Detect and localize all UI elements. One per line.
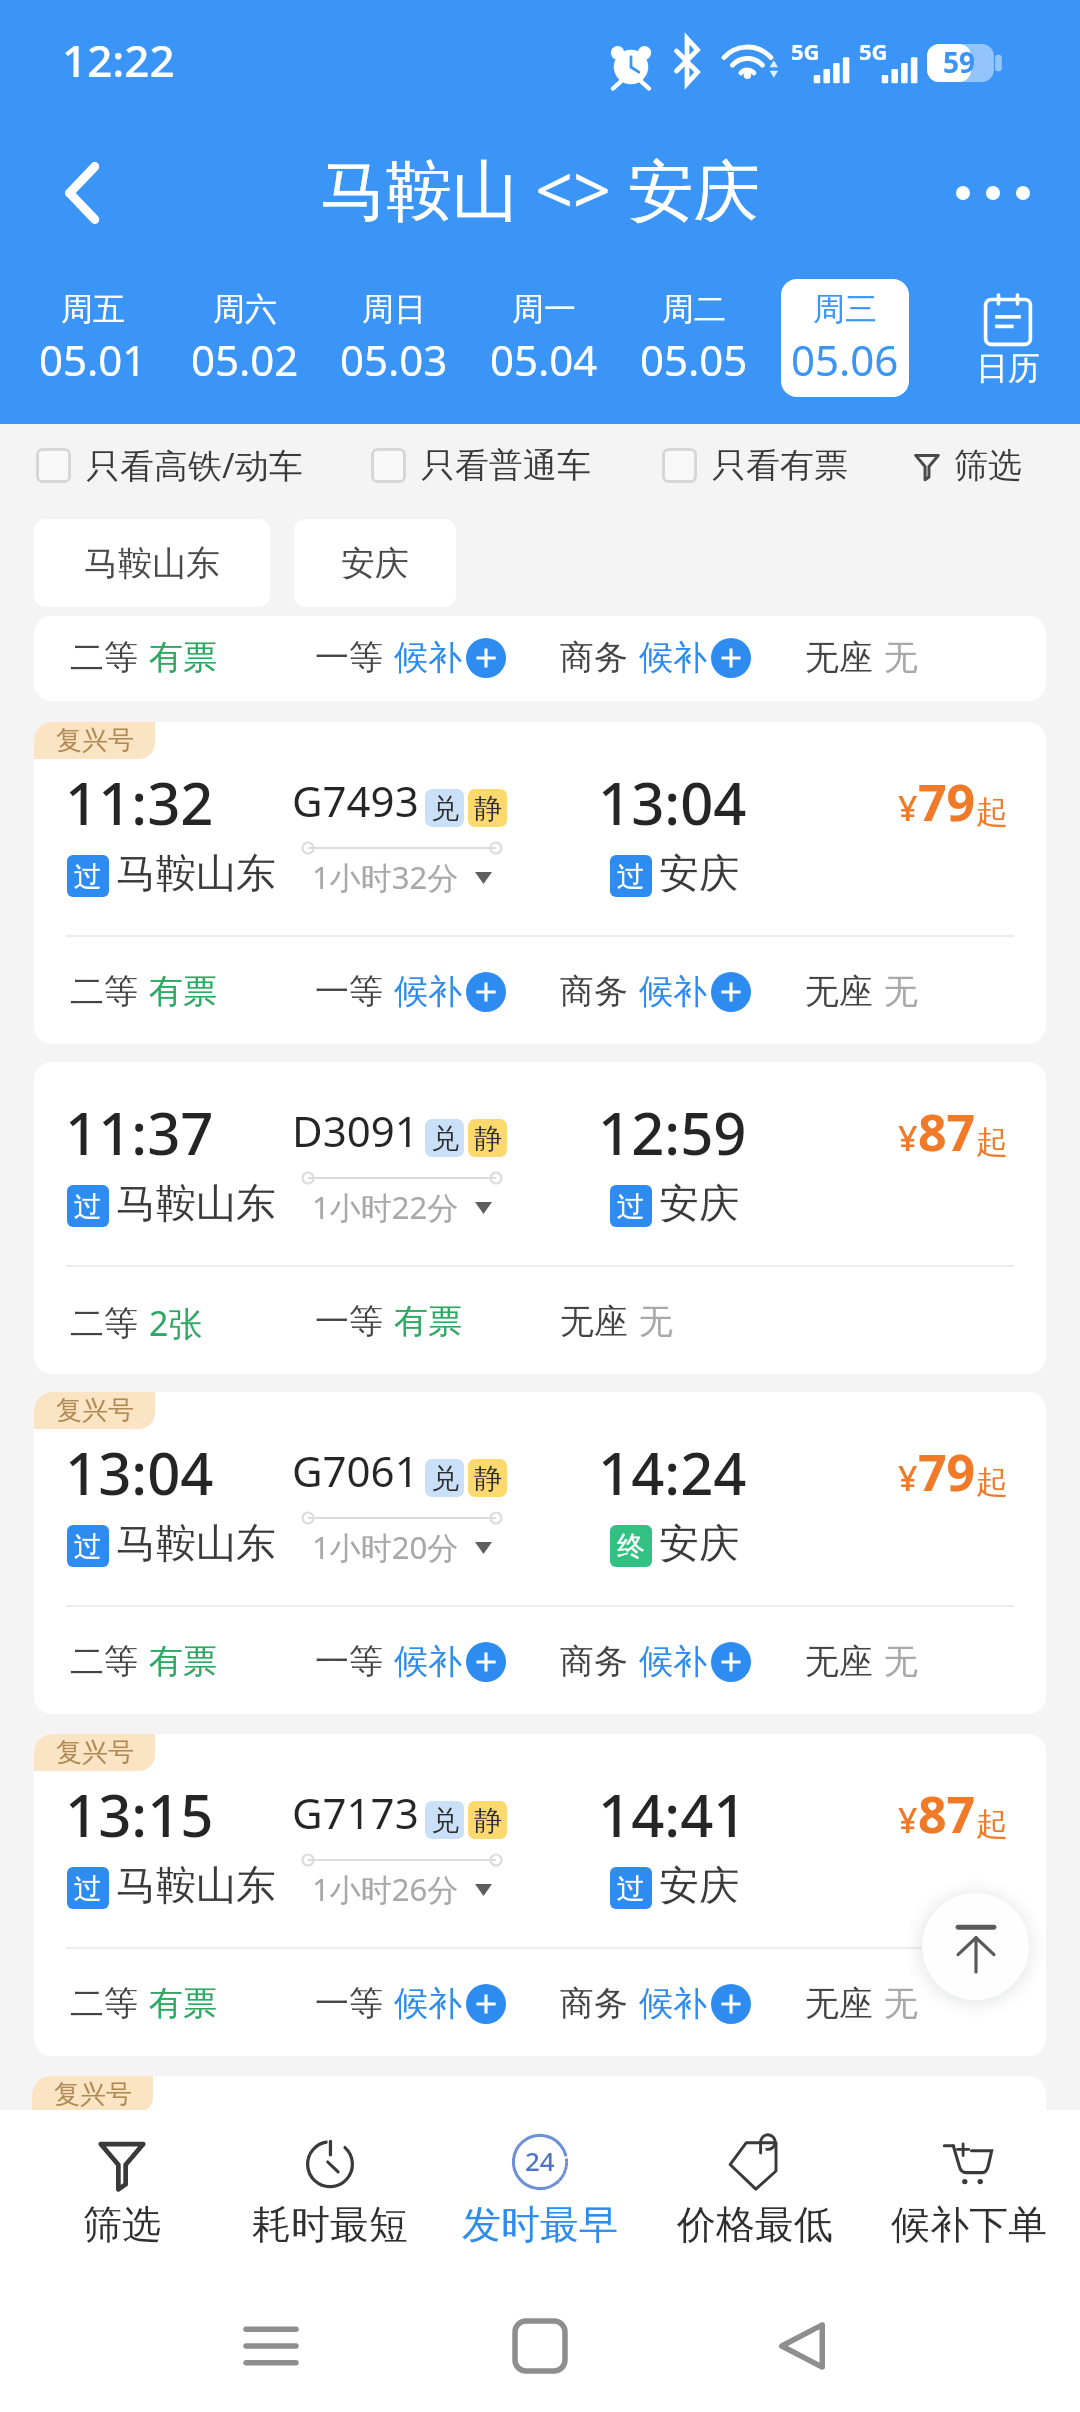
staticText: 一等 <box>315 1300 383 1343</box>
staticText: 静 <box>474 1461 502 1496</box>
button[interactable]: Back <box>742 2286 862 2406</box>
staticText: 无座 <box>805 1640 873 1683</box>
staticText: 周六 <box>213 289 277 329</box>
button[interactable]: Add 商务 waitlist <box>711 1642 751 1682</box>
staticText: 候补 <box>394 1640 462 1683</box>
button[interactable]: 周五 <box>29 279 157 397</box>
button[interactable]: 复兴号 <box>34 1392 1046 1714</box>
staticText: 79 <box>918 1438 976 1506</box>
staticText: 无座 <box>805 970 873 1013</box>
button[interactable]: More options <box>930 118 1080 268</box>
staticText: 起 <box>976 1122 1008 1162</box>
staticText: 安庆 <box>659 1518 739 1568</box>
button[interactable]: 复兴号 <box>34 1734 1046 2056</box>
staticText: 马鞍山东 <box>116 1518 276 1568</box>
staticText: 安庆 <box>659 1860 739 1910</box>
staticText: 05.03 <box>340 331 448 388</box>
button[interactable]: Recents <box>211 2286 331 2406</box>
button[interactable]: 复兴号 <box>34 722 1046 1044</box>
button[interactable]: Back <box>0 118 150 268</box>
staticText: 周一 <box>512 289 576 329</box>
staticText: 复兴号 <box>54 2078 132 2111</box>
staticText: 87 <box>918 1098 976 1166</box>
staticText: 14:24 <box>598 1433 747 1512</box>
button[interactable]: 只看有票 <box>662 424 848 506</box>
staticText: 05.04 <box>490 331 598 388</box>
staticText: 过 <box>74 1871 102 1906</box>
button[interactable]: Calendar <box>943 290 1073 388</box>
button[interactable]: Add 商务 waitlist <box>711 1984 751 2024</box>
staticText: 候补 <box>394 636 462 679</box>
staticText: 马鞍山东 <box>84 542 220 585</box>
staticText: 耗时最短 <box>252 2200 408 2249</box>
staticText: 二等 <box>70 1640 138 1683</box>
staticText: 一等 <box>315 636 383 679</box>
staticText: 起 <box>976 1804 1008 1844</box>
staticText: 安庆 <box>341 542 409 585</box>
staticText: ¥ <box>898 1797 918 1843</box>
staticText: 日历 <box>976 348 1040 388</box>
staticText: 周五 <box>61 289 125 329</box>
staticText: 05.01 <box>39 331 147 388</box>
staticText: 1小时22分 <box>312 1186 459 1228</box>
staticText: 二等 <box>70 970 138 1013</box>
staticText: G7061 <box>292 1442 419 1499</box>
button[interactable]: Add 商务 waitlist <box>711 638 751 678</box>
button[interactable]: 周一 <box>480 279 608 397</box>
staticText: 11:37 <box>65 1093 214 1172</box>
button[interactable]: 周日 <box>330 279 458 397</box>
staticText: 周三 <box>813 289 877 329</box>
button[interactable]: 周六 <box>181 279 309 397</box>
button[interactable]: Home <box>480 2286 600 2406</box>
staticText: 有票 <box>149 1982 217 2025</box>
staticText: 11:32 <box>65 763 214 842</box>
button[interactable]: 候补下单 <box>864 2110 1074 2272</box>
button[interactable]: 周二 <box>630 279 758 397</box>
staticText: 1小时32分 <box>312 856 459 898</box>
staticText: 5G <box>859 36 888 66</box>
staticText: 过 <box>617 859 645 894</box>
button[interactable]: 筛选 <box>17 2110 227 2272</box>
staticText: 13:04 <box>598 763 747 842</box>
button[interactable]: 只看普通车 <box>371 424 591 506</box>
button[interactable]: 价格最低 <box>650 2110 860 2272</box>
staticText: 13:15 <box>65 1775 214 1854</box>
staticText: 起 <box>976 1462 1008 1502</box>
staticText: 12:59 <box>598 1093 747 1172</box>
staticText: 12:22 <box>62 30 175 90</box>
button[interactable]: Add 一等 waitlist <box>466 1642 506 1682</box>
button[interactable]: 马鞍山东 <box>34 519 270 607</box>
button[interactable]: Add 一等 waitlist <box>466 972 506 1012</box>
button[interactable]: 24 <box>435 2110 645 2272</box>
staticText: 过 <box>74 1529 102 1564</box>
button[interactable]: 周三 <box>781 279 909 397</box>
staticText: 一等 <box>315 1640 383 1683</box>
button[interactable]: Add 商务 waitlist <box>711 972 751 1012</box>
staticText: 周二 <box>662 289 726 329</box>
staticText: 有票 <box>149 1640 217 1683</box>
button[interactable]: 只看高铁/动车 <box>36 424 303 506</box>
staticText: 5G <box>791 36 820 66</box>
staticText: ¥ <box>898 785 918 831</box>
button[interactable]: Scroll to top <box>903 1874 1047 2018</box>
staticText: 一等 <box>315 970 383 1013</box>
staticText: 59 <box>943 43 976 81</box>
button[interactable]: 筛选 <box>912 424 1022 506</box>
staticText: 复兴号 <box>56 724 134 757</box>
staticText: 无 <box>884 970 918 1013</box>
staticText: 有票 <box>149 636 217 679</box>
staticText: 无座 <box>560 1300 628 1343</box>
button[interactable]: 安庆 <box>294 519 456 607</box>
staticText: 兑 <box>431 1461 459 1496</box>
staticText: 无座 <box>805 636 873 679</box>
button[interactable]: 二等 <box>34 616 1046 701</box>
button[interactable]: 11:37 <box>34 1062 1046 1374</box>
button[interactable]: 耗时最短 <box>225 2110 435 2272</box>
staticText: 79 <box>918 768 976 836</box>
staticText: 过 <box>74 859 102 894</box>
staticText: 13:04 <box>65 1433 214 1512</box>
button[interactable]: Add 一等 waitlist <box>466 1984 506 2024</box>
button[interactable]: Add 一等 waitlist <box>466 638 506 678</box>
staticText: 兑 <box>431 1803 459 1838</box>
staticText: 商务 <box>560 636 628 679</box>
